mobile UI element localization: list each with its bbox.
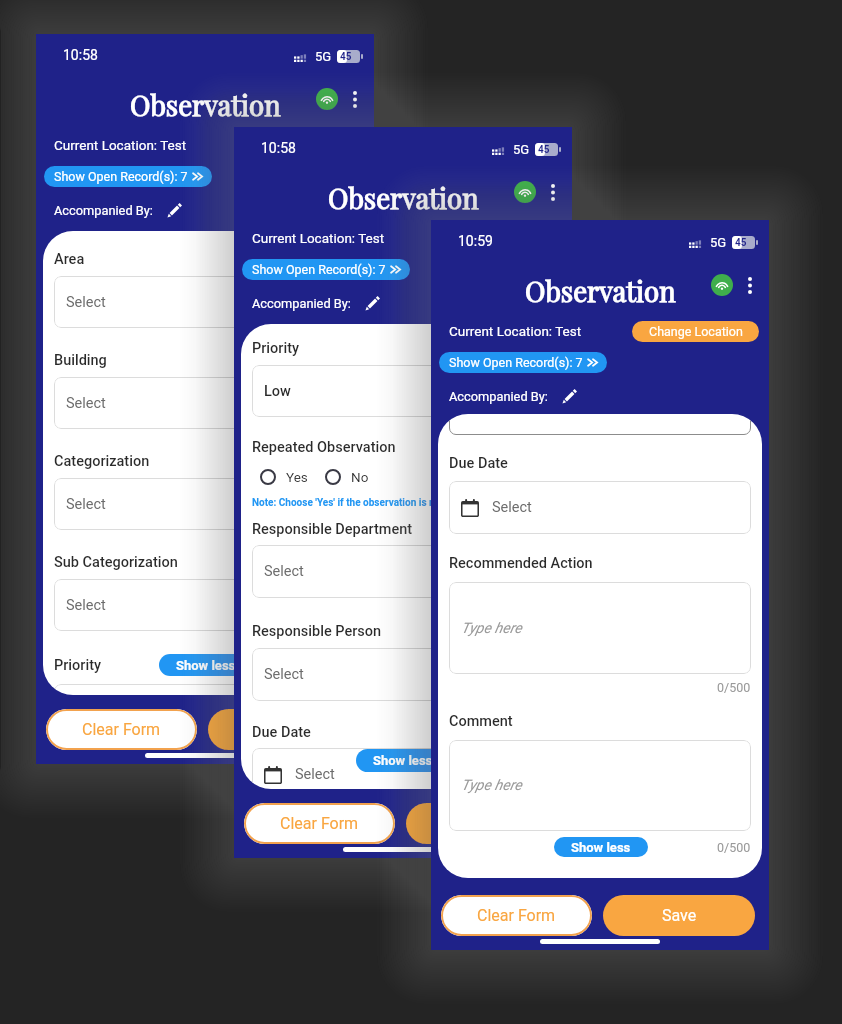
- button[interactable]: Show Open Record(s): 7: [44, 166, 212, 187]
- staticText: Observation: [525, 272, 676, 309]
- button[interactable]: Save: [406, 803, 558, 844]
- staticText: 5G: [315, 49, 332, 64]
- button[interactable]: Show less: [159, 654, 253, 676]
- button[interactable]: Select: [252, 748, 554, 789]
- button[interactable]: Save: [208, 709, 360, 750]
- button[interactable]: Network status: [316, 88, 338, 110]
- button[interactable]: No: [325, 469, 341, 485]
- staticText: Show Open Record(s): 7: [252, 262, 386, 277]
- button[interactable]: Select: [252, 648, 554, 701]
- staticText: 45: [340, 51, 352, 63]
- staticText: Repeated Observation: [252, 439, 396, 456]
- staticText: Accompanied By:: [54, 203, 153, 218]
- button[interactable]: Clear Form: [244, 803, 395, 844]
- staticText: Recommended Action: [449, 555, 593, 572]
- staticText: Priority: [252, 340, 300, 357]
- staticText: Select: [66, 597, 106, 614]
- button[interactable]: Low: [54, 684, 356, 695]
- staticText: Show less: [373, 753, 433, 768]
- staticText: 5G: [710, 235, 727, 250]
- staticText: Show less: [571, 840, 631, 855]
- button[interactable]: Edit accompanied by: [558, 386, 580, 407]
- button[interactable]: Network status: [711, 274, 733, 296]
- staticText: Current Location: Test: [252, 230, 385, 246]
- staticText: Save: [465, 814, 500, 833]
- staticText: Select: [66, 395, 106, 412]
- button[interactable]: Clear Form: [46, 709, 197, 750]
- staticText: Due Date: [252, 724, 311, 741]
- staticText: Sub Categorization: [54, 554, 178, 571]
- button[interactable]: More options: [542, 178, 564, 206]
- staticText: Accompanied By:: [252, 296, 351, 311]
- button[interactable]: Save: [603, 895, 755, 936]
- staticText: Select: [295, 766, 335, 783]
- staticText: No: [351, 469, 369, 485]
- staticText: Clear Form: [82, 720, 161, 739]
- button[interactable]: Select: [54, 377, 356, 429]
- staticText: Due Date: [449, 455, 508, 472]
- staticText: Observation: [130, 86, 281, 123]
- staticText: Responsible Department: [252, 521, 413, 538]
- staticText: 45: [538, 144, 550, 156]
- staticText: Select: [66, 496, 106, 513]
- staticText: Select: [492, 499, 532, 516]
- staticText: Building: [54, 352, 107, 369]
- button[interactable]: Type here: [449, 582, 751, 674]
- button[interactable]: More options: [739, 271, 761, 299]
- staticText: Show Open Record(s): 7: [449, 355, 583, 370]
- staticText: Type here: [461, 620, 522, 637]
- staticText: 5G: [513, 142, 530, 157]
- button[interactable]: Network status: [514, 181, 536, 203]
- staticText: 10:58: [63, 47, 98, 63]
- staticText: Clear Form: [280, 814, 359, 833]
- button[interactable]: Select: [449, 481, 751, 534]
- button[interactable]: Select: [252, 545, 554, 598]
- staticText: Save: [267, 720, 302, 739]
- staticText: 0/500: [717, 840, 751, 855]
- staticText: Observation: [328, 179, 479, 216]
- staticText: 10:58: [261, 140, 296, 156]
- button[interactable]: Low: [252, 365, 554, 417]
- staticText: Responsible Person: [252, 623, 382, 640]
- staticText: Select: [66, 294, 106, 311]
- staticText: 45: [735, 237, 747, 249]
- staticText: Select: [264, 563, 304, 580]
- staticText: Clear Form: [477, 906, 556, 925]
- button[interactable]: Change Location: [632, 321, 759, 342]
- staticText: Select: [264, 666, 304, 683]
- button[interactable]: More options: [344, 85, 366, 113]
- button[interactable]: Type here: [449, 740, 751, 831]
- staticText: Comment: [449, 713, 513, 730]
- staticText: Current Location: Test: [54, 137, 187, 153]
- button[interactable]: Show Open Record(s): 7: [439, 352, 607, 373]
- button[interactable]: Show less: [554, 837, 648, 857]
- staticText: 10:59: [458, 233, 493, 249]
- staticText: Change Location: [649, 324, 743, 339]
- staticText: Save: [662, 906, 697, 925]
- button[interactable]: Show less: [356, 749, 450, 772]
- button[interactable]: Yes: [260, 469, 276, 485]
- button[interactable]: Clear Form: [441, 895, 592, 936]
- staticText: Yes: [286, 469, 308, 485]
- button[interactable]: Edit accompanied by: [361, 293, 383, 314]
- staticText: Show Open Record(s): 7: [54, 169, 188, 184]
- staticText: Current Location: Test: [449, 323, 582, 339]
- staticText: Note: Choose 'Yes' if the observation is…: [252, 497, 554, 509]
- button[interactable]: Select: [54, 276, 356, 328]
- staticText: Low: [264, 383, 291, 400]
- staticText: 0/500: [717, 680, 751, 695]
- button[interactable]: Select: [54, 478, 356, 530]
- staticText: Accompanied By:: [449, 389, 548, 404]
- staticText: Categorization: [54, 453, 150, 470]
- staticText: Show less: [176, 658, 236, 673]
- staticText: Type here: [461, 777, 522, 794]
- button[interactable]: Show Open Record(s): 7: [242, 259, 410, 280]
- button[interactable]: Edit accompanied by: [163, 200, 185, 221]
- staticText: Area: [54, 251, 85, 268]
- button[interactable]: Select: [54, 579, 356, 631]
- staticText: Priority: [54, 657, 102, 674]
